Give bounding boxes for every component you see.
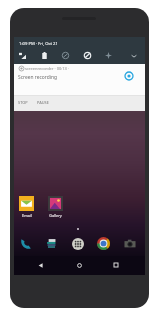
staticText: Screen recording (18, 74, 57, 81)
staticText: PAUSE (37, 100, 49, 105)
staticText: Gallery (49, 213, 62, 218)
button[interactable]: Gallery (42, 196, 69, 218)
button[interactable]: Expand quick settings (128, 50, 139, 61)
button[interactable]: Email (13, 196, 40, 218)
button[interactable]: Messages (44, 236, 59, 251)
button[interactable]: Battery saver (39, 50, 50, 61)
button[interactable]: Recent apps (109, 258, 123, 272)
button[interactable]: PAUSE (34, 98, 52, 107)
button[interactable]: Screen recorder action (122, 69, 136, 83)
button[interactable]: Mobile data (17, 50, 28, 61)
button[interactable]: Chrome (96, 236, 111, 251)
button[interactable]: Phone (18, 236, 33, 251)
button[interactable]: Flashlight (103, 50, 114, 61)
button[interactable]: Screen recording notification (14, 64, 145, 95)
staticText: Email (22, 213, 32, 218)
button[interactable]: All apps (70, 236, 85, 251)
button[interactable]: Do not disturb (60, 50, 71, 61)
staticText: 1:09 PM · Fri, Oct 21 (19, 41, 58, 47)
button[interactable]: Camera (122, 236, 137, 251)
button[interactable]: Auto rotate (82, 50, 93, 61)
staticText: screenrecorder · 00:13 · (25, 66, 69, 71)
button[interactable]: Home (72, 258, 86, 272)
button[interactable]: STOP (15, 98, 31, 107)
button[interactable]: Back (33, 258, 47, 272)
staticText: STOP (18, 100, 28, 105)
